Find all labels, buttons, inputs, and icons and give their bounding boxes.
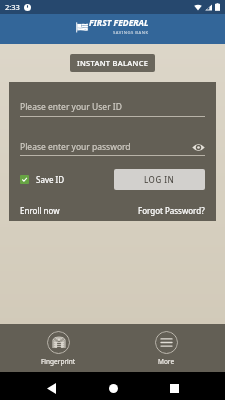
staticText: More: [158, 357, 175, 366]
button[interactable]: More: [149, 329, 184, 368]
staticText: FIRST FEDERAL: [89, 17, 149, 29]
staticText: Please enter your password: [20, 141, 131, 153]
button[interactable]: Recents: [163, 377, 185, 399]
button[interactable]: Back: [40, 377, 62, 399]
staticText: Save ID: [36, 174, 65, 185]
staticText: Please enter your User ID: [20, 101, 122, 113]
staticText: Fingerprint: [41, 357, 76, 366]
staticText: SAVINGS BANK: [113, 30, 149, 36]
button[interactable]: LOG IN: [114, 169, 205, 190]
staticText: INSTANT BALANCE: [77, 58, 149, 68]
staticText: 2:33: [5, 2, 20, 12]
button[interactable]: Forgot Password?: [138, 205, 205, 216]
button[interactable]: Fingerprint: [35, 329, 82, 368]
staticText: LOG IN: [144, 174, 175, 185]
button[interactable]: Enroll now: [20, 205, 60, 216]
other: Show password: [192, 143, 205, 152]
button[interactable]: INSTANT BALANCE: [70, 54, 155, 72]
button[interactable]: Save ID: [20, 174, 65, 185]
button[interactable]: Home: [102, 377, 124, 399]
